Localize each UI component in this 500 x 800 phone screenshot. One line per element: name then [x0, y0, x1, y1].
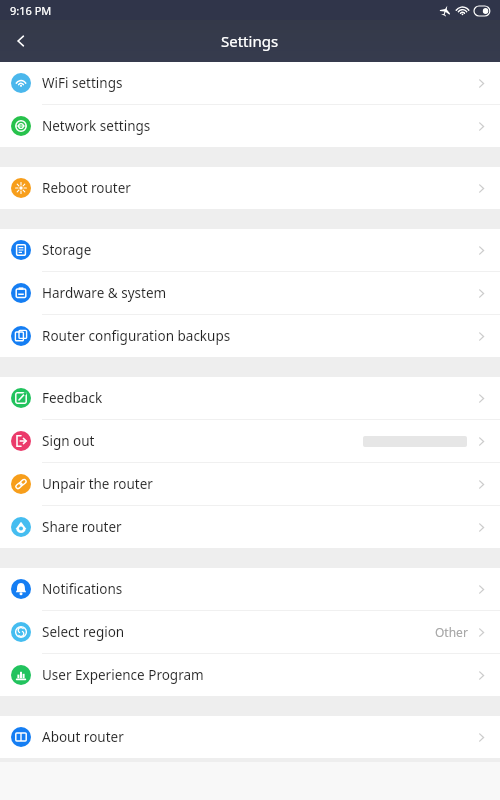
staticText: WiFi settings	[42, 74, 475, 92]
button[interactable]: Hardware & system	[0, 272, 500, 314]
staticText: Hardware & system	[42, 284, 475, 302]
staticText: Sign out	[42, 432, 363, 450]
button[interactable]: Storage	[0, 229, 500, 271]
staticText: Settings	[221, 31, 279, 51]
button[interactable]: Select region	[0, 611, 500, 653]
button[interactable]: Back	[0, 20, 42, 62]
staticText: Other	[435, 624, 468, 640]
staticText: Reboot router	[42, 179, 475, 197]
staticText: User Experience Program	[42, 666, 475, 684]
button[interactable]: Share router	[0, 506, 500, 548]
staticText: 9:16 PM	[10, 3, 52, 18]
staticText: Storage	[42, 241, 475, 259]
staticText: About router	[42, 728, 475, 746]
staticText: Router configuration backups	[42, 327, 475, 345]
button[interactable]: About router	[0, 716, 500, 758]
staticText: Feedback	[42, 389, 475, 407]
button[interactable]: Notifications	[0, 568, 500, 610]
staticText: Notifications	[42, 580, 475, 598]
staticText: Unpair the router	[42, 475, 475, 493]
button[interactable]: Feedback	[0, 377, 500, 419]
button[interactable]: Network settings	[0, 105, 500, 147]
button[interactable]: User Experience Program	[0, 654, 500, 696]
button[interactable]: Sign out	[0, 420, 500, 462]
button[interactable]: Unpair the router	[0, 463, 500, 505]
button[interactable]: Reboot router	[0, 167, 500, 209]
button[interactable]: WiFi settings	[0, 62, 500, 104]
staticText: Share router	[42, 518, 475, 536]
staticText: Select region	[42, 623, 435, 641]
button[interactable]: Router configuration backups	[0, 315, 500, 357]
staticText: Network settings	[42, 117, 475, 135]
